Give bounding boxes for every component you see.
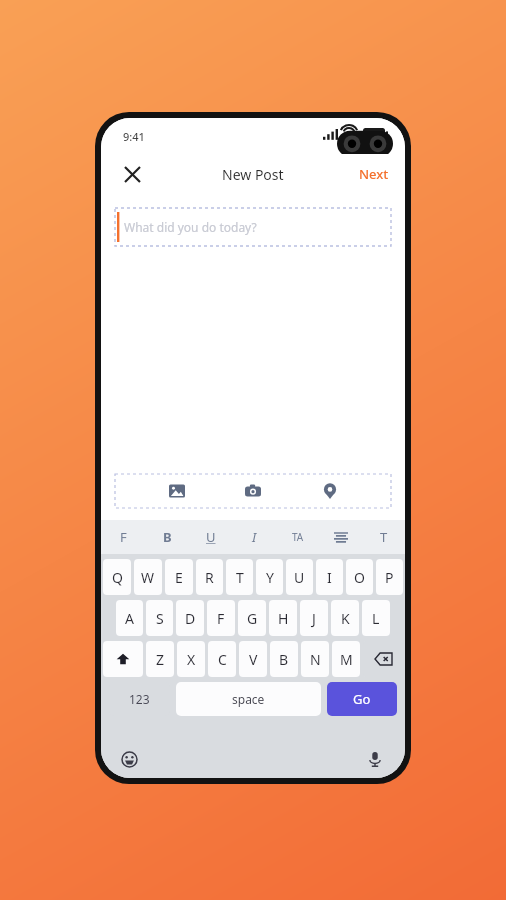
button[interactable]: J (300, 600, 328, 636)
button[interactable]: Backspace (363, 641, 403, 677)
button[interactable]: Add image (162, 476, 192, 506)
staticText: A (125, 609, 134, 628)
staticText: 9:41 (123, 129, 145, 144)
staticText: 123 (129, 691, 150, 707)
button[interactable]: Y (256, 559, 283, 595)
button[interactable]: A (116, 600, 143, 636)
staticText: TA (292, 530, 304, 544)
button[interactable]: E (165, 559, 193, 595)
button[interactable]: N (301, 641, 329, 677)
staticText: I (327, 568, 332, 587)
staticText: New Post (222, 165, 284, 184)
button[interactable]: P (376, 559, 403, 595)
staticText: D (185, 609, 196, 628)
button[interactable]: Z (146, 641, 174, 677)
staticText: What did you do today? (124, 219, 257, 235)
staticText: E (175, 568, 183, 587)
staticText: O (354, 568, 365, 587)
button[interactable]: M (332, 641, 360, 677)
button[interactable]: U (286, 559, 313, 595)
staticText: J (312, 609, 316, 628)
button[interactable]: I (233, 520, 276, 554)
staticText: U (294, 568, 305, 587)
staticText: Z (156, 650, 165, 669)
staticText: W (141, 568, 155, 587)
button[interactable]: B (145, 520, 189, 554)
button[interactable]: G (238, 600, 266, 636)
button[interactable]: Emoji (115, 745, 143, 773)
staticText: I (252, 528, 257, 546)
button[interactable]: F (101, 520, 145, 554)
staticText: L (372, 609, 380, 628)
staticText: F (120, 528, 127, 546)
button[interactable]: Add location (315, 476, 345, 506)
button[interactable]: W (134, 559, 162, 595)
button[interactable]: Q (103, 559, 131, 595)
staticText: F (217, 609, 225, 628)
staticText: Next (359, 165, 389, 183)
staticText: Y (266, 568, 274, 587)
button[interactable]: TA (276, 520, 319, 554)
button[interactable]: O (346, 559, 373, 595)
staticText: C (218, 650, 227, 669)
button[interactable]: I (316, 559, 343, 595)
button[interactable]: C (208, 641, 236, 677)
button[interactable]: K (331, 600, 359, 636)
staticText: Go (353, 690, 371, 708)
staticText: U (206, 528, 216, 546)
button[interactable]: H (269, 600, 297, 636)
staticText: P (385, 568, 394, 587)
button[interactable]: B (270, 641, 298, 677)
button[interactable]: Shift (103, 641, 143, 677)
staticText: T (236, 568, 244, 587)
button[interactable]: Next (355, 159, 393, 189)
button[interactable]: D (176, 600, 204, 636)
button[interactable]: F (207, 600, 235, 636)
staticText: V (249, 650, 258, 669)
button[interactable]: Close (115, 157, 149, 191)
staticText: T (380, 528, 388, 546)
button[interactable]: Take photo (238, 476, 268, 506)
button[interactable]: Align (319, 520, 362, 554)
staticText: G (247, 609, 258, 628)
staticText: N (310, 650, 321, 669)
staticText: R (205, 568, 214, 587)
button[interactable]: Voice input (361, 745, 389, 773)
button[interactable]: T (226, 559, 253, 595)
staticText: K (341, 609, 350, 628)
button[interactable]: R (196, 559, 223, 595)
button[interactable]: T (362, 520, 405, 554)
staticText: M (340, 650, 353, 669)
button[interactable]: S (146, 600, 173, 636)
button[interactable]: X (177, 641, 205, 677)
button[interactable]: V (239, 641, 267, 677)
staticText: B (163, 528, 172, 546)
staticText: space (232, 691, 265, 707)
staticText: X (187, 650, 196, 669)
button[interactable]: What did you do today? (115, 208, 391, 246)
button[interactable]: U (189, 520, 233, 554)
button[interactable]: space (176, 682, 321, 716)
button[interactable]: Go (327, 682, 397, 716)
staticText: S (156, 609, 164, 628)
button[interactable]: 123 (109, 682, 170, 716)
button[interactable]: L (362, 600, 390, 636)
staticText: H (278, 609, 289, 628)
staticText: B (279, 650, 289, 669)
staticText: Q (112, 568, 123, 587)
